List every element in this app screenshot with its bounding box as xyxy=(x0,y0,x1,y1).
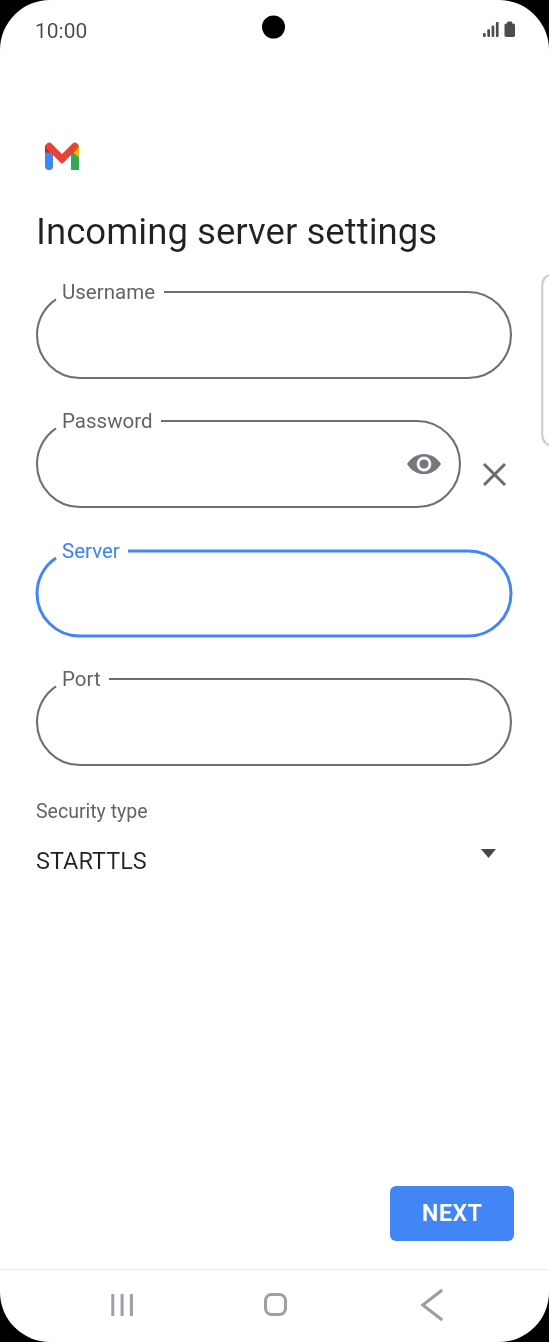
button[interactable]: Clear password xyxy=(470,450,518,498)
button[interactable]: Show password xyxy=(400,440,448,488)
staticText: Incoming server settings xyxy=(36,210,438,253)
staticText: NEXT xyxy=(422,1200,483,1227)
staticText: Port xyxy=(62,667,101,691)
staticText: Security type xyxy=(36,800,148,823)
staticText: Server xyxy=(62,539,120,563)
button[interactable]: Back xyxy=(394,1276,467,1333)
staticText: Password xyxy=(62,409,153,433)
button[interactable]: STARTTLS xyxy=(0,836,549,890)
button[interactable]: NEXT xyxy=(390,1186,514,1241)
button[interactable]: Recent apps xyxy=(86,1276,159,1333)
button[interactable]: Home xyxy=(239,1276,312,1333)
staticText: Username xyxy=(62,280,156,304)
staticText: STARTTLS xyxy=(36,847,147,875)
staticText: 10:00 xyxy=(35,19,88,44)
